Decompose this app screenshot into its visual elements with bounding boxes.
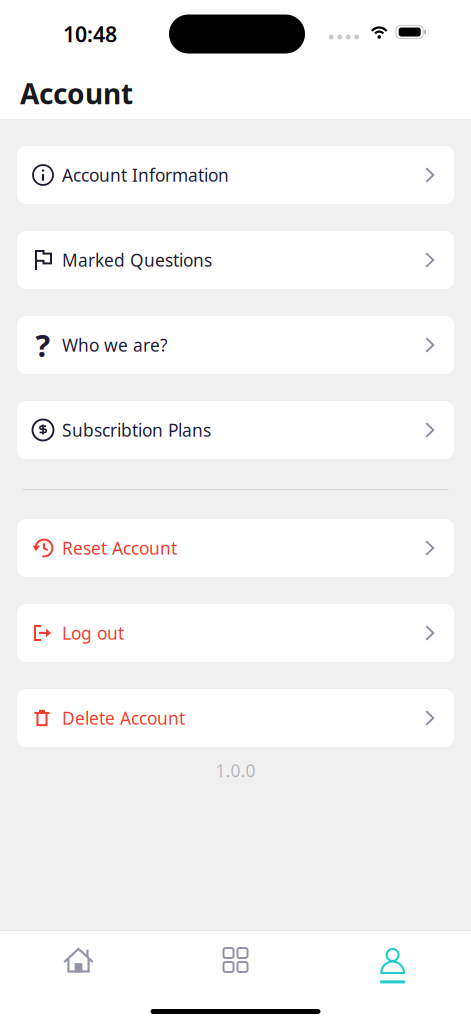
staticText: Subscribtion Plans [62, 418, 211, 441]
button[interactable]: Categories [157, 931, 314, 989]
staticText: Account Information [62, 163, 229, 186]
staticText: Delete Account [62, 706, 185, 729]
staticText: Reset Account [62, 536, 177, 559]
staticText: 10:48 [63, 20, 117, 48]
staticText: Marked Questions [62, 248, 212, 271]
staticText: 1.0.0 [215, 759, 255, 782]
button[interactable]: Log out [17, 604, 454, 662]
button[interactable]: Subscribtion Plans [17, 401, 454, 459]
button[interactable]: Reset Account [17, 519, 454, 577]
button[interactable]: Account [314, 931, 471, 989]
button[interactable]: Delete Account [17, 689, 454, 747]
button[interactable]: Account Information [17, 146, 454, 204]
staticText: Who we are? [62, 333, 168, 356]
staticText: Log out [62, 621, 124, 644]
button[interactable]: ? [17, 316, 454, 374]
staticText: Account [20, 75, 133, 112]
staticText: ? [35, 325, 50, 365]
button[interactable]: Marked Questions [17, 231, 454, 289]
button[interactable]: Home [0, 931, 157, 989]
